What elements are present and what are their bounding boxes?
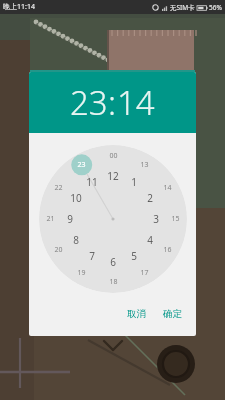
staticText: 晚上11:14 [3, 2, 35, 12]
staticText: 11 [86, 175, 98, 189]
button[interactable]: 确定 [156, 305, 189, 323]
staticText: 23 [70, 80, 108, 125]
staticText: 18 [109, 277, 118, 287]
staticText: 无SIM卡 [170, 3, 195, 12]
staticText: 3 [153, 212, 159, 226]
staticText: 15 [171, 214, 180, 224]
staticText: : [108, 80, 117, 125]
staticText: 5 [131, 249, 137, 263]
staticText: 19 [77, 268, 86, 278]
staticText: 13 [140, 160, 149, 170]
staticText: 16 [163, 245, 172, 255]
staticText: 14 [163, 183, 172, 193]
staticText: 1 [131, 175, 137, 189]
staticText: 20 [54, 245, 63, 255]
staticText: 17 [140, 268, 149, 278]
staticText: 7 [89, 249, 95, 263]
staticText: 10 [70, 191, 82, 205]
staticText: 确定 [163, 308, 182, 320]
staticText: 9 [67, 212, 73, 226]
staticText: 2 [147, 191, 153, 205]
staticText: 6 [110, 255, 116, 269]
staticText: 22 [54, 183, 63, 193]
button[interactable]: Select hour [39, 145, 187, 293]
button[interactable]: 23 [70, 80, 108, 125]
staticText: 4 [147, 233, 153, 247]
staticText: 23 [77, 160, 86, 170]
staticText: 14 [117, 80, 155, 125]
button[interactable]: 取消 [120, 305, 153, 323]
staticText: 21 [46, 214, 55, 224]
staticText: 12 [107, 169, 119, 183]
staticText: 56% [209, 3, 222, 12]
staticText: 00 [109, 151, 118, 161]
staticText: 取消 [127, 308, 146, 320]
staticText: 8 [73, 233, 79, 247]
button[interactable]: 14 [117, 80, 155, 125]
